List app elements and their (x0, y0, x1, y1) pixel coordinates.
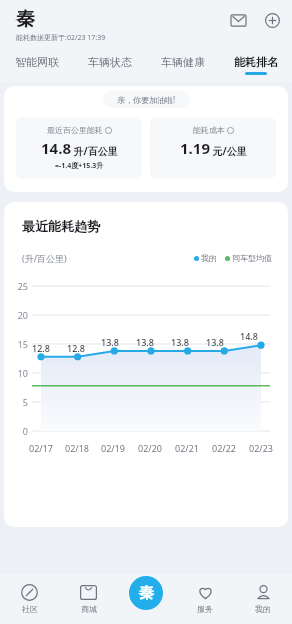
staticText: 亲，你要加油啦! (117, 94, 176, 105)
staticText: 15 (4, 338, 28, 350)
staticText: 同车型均值 (232, 253, 272, 263)
staticText: 02/18 (65, 442, 89, 454)
button[interactable]: 服务 (176, 574, 234, 624)
staticText: 智能网联 (15, 55, 59, 69)
staticText: 我的 (201, 253, 217, 263)
button[interactable]: 秦 Home (129, 576, 163, 610)
button[interactable]: 智能网联 (0, 52, 73, 82)
staticText: 02/20 (138, 442, 162, 454)
staticText: 最近百公里能耗 (47, 125, 103, 135)
staticText: 02/17 (29, 442, 53, 454)
staticText: 升/百公里 (71, 144, 118, 158)
button[interactable]: 我的 (234, 574, 292, 624)
button[interactable]: 能耗排名 (219, 52, 292, 82)
staticText: 0 (4, 425, 28, 437)
staticText: 10 (4, 367, 28, 379)
staticText: 能耗排名 (234, 55, 278, 69)
staticText: 元/公里 (210, 144, 247, 158)
staticText: 13.8 (204, 336, 226, 348)
staticText: 秦 (139, 584, 154, 603)
staticText: 1.19 (180, 138, 210, 158)
staticText: =-1.4度+15.3升 (55, 161, 104, 171)
button[interactable]: 能耗成本 (150, 117, 276, 179)
button[interactable]: Add (262, 10, 282, 30)
staticText: 02/22 (212, 442, 236, 454)
staticText: 车辆状态 (88, 55, 132, 69)
button[interactable]: 最近百公里能耗 (16, 117, 142, 179)
staticText: 13.8 (169, 336, 191, 348)
button[interactable]: 商城 (59, 574, 118, 624)
staticText: 12.8 (30, 342, 52, 354)
staticText: 能耗成本 (193, 125, 225, 135)
staticText: 服务 (197, 604, 213, 614)
button[interactable]: 社区 (0, 574, 59, 624)
staticText: 我的 (255, 604, 271, 614)
staticText: 最近能耗趋势 (22, 218, 100, 234)
staticText: 20 (4, 309, 28, 321)
staticText: 能耗数据更新于:02/23 17:39 (16, 33, 106, 43)
staticText: 02/19 (101, 442, 125, 454)
button[interactable]: 车辆状态 (73, 52, 146, 82)
staticText: 12.8 (65, 342, 87, 354)
staticText: 13.8 (99, 336, 121, 348)
staticText: 14.8 (238, 330, 260, 342)
staticText: 02/21 (175, 442, 199, 454)
staticText: 02/23 (249, 442, 273, 454)
button[interactable]: 车辆健康 (146, 52, 219, 82)
staticText: 14.8 (41, 138, 71, 158)
staticText: 13.8 (134, 336, 156, 348)
staticText: 社区 (22, 604, 38, 614)
staticText: 车辆健康 (161, 55, 205, 69)
staticText: 秦 (16, 7, 35, 31)
staticText: 商城 (81, 604, 97, 614)
staticText: (升/百公里) (22, 252, 67, 264)
staticText: 5 (4, 396, 28, 408)
button[interactable]: Messages (228, 10, 248, 30)
staticText: 25 (4, 280, 28, 292)
